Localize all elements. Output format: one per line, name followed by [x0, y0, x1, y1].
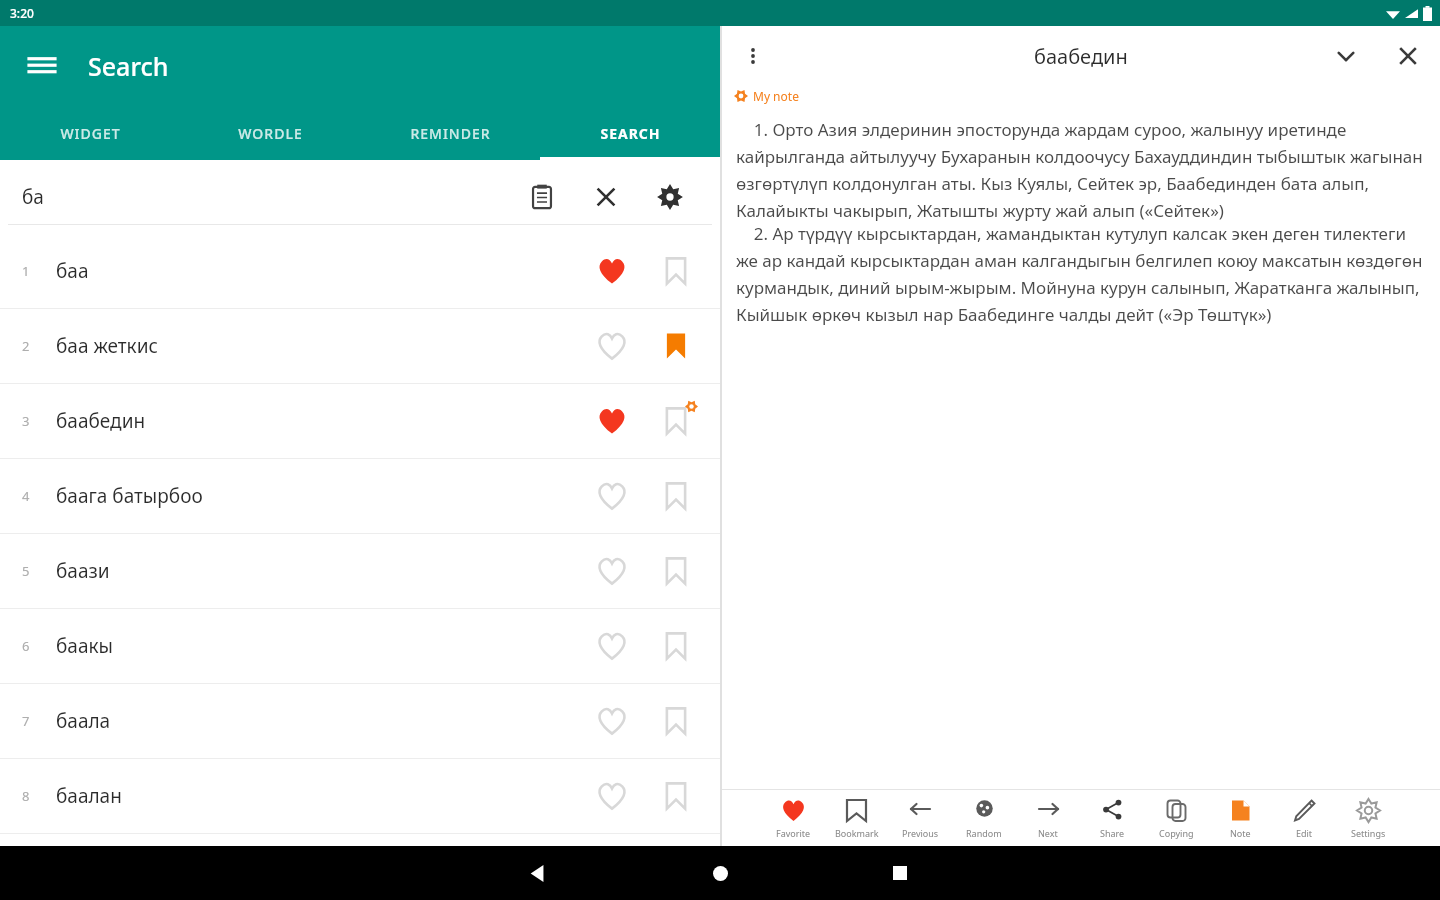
button[interactable]: Favorite — [588, 622, 636, 670]
staticText: Search — [88, 49, 169, 83]
staticText: WORDLE — [238, 124, 303, 143]
staticText: ба — [22, 184, 44, 210]
button[interactable]: Favorite — [762, 790, 825, 846]
button[interactable]: 4 — [0, 459, 720, 533]
staticText: 7 — [22, 712, 30, 730]
staticText: 2 — [22, 337, 30, 355]
button[interactable]: Paste — [522, 177, 562, 217]
button[interactable]: Bookmark — [652, 547, 700, 595]
staticText: Favorite — [776, 827, 811, 839]
button[interactable]: Bookmark — [652, 472, 700, 520]
staticText: Random — [966, 827, 1002, 839]
button[interactable]: Favorite — [588, 397, 636, 445]
staticText: 6 — [22, 637, 30, 655]
staticText: Share — [1100, 827, 1125, 839]
button[interactable]: Next — [1016, 790, 1080, 846]
button[interactable]: Bookmark — [652, 622, 700, 670]
button[interactable]: SEARCH — [540, 106, 720, 160]
staticText: 5 — [22, 562, 30, 580]
staticText: Previous — [902, 827, 939, 839]
staticText: My note — [753, 88, 799, 104]
staticText: баа — [56, 258, 89, 284]
staticText: REMINDER — [410, 124, 491, 143]
staticText: 3 — [22, 412, 30, 430]
staticText: баага батырбоо — [56, 483, 203, 509]
button[interactable]: Share — [1080, 790, 1144, 846]
staticText: 1. Орто Азия элдеринин эпосторунда жарда… — [736, 118, 1426, 222]
button[interactable]: 3 — [0, 384, 720, 458]
button[interactable]: Favorite — [588, 472, 636, 520]
staticText: Copying — [1159, 827, 1194, 839]
button[interactable]: WORDLE — [180, 106, 360, 160]
button[interactable]: 6 — [0, 609, 720, 683]
button[interactable]: Back — [513, 849, 561, 897]
button[interactable]: Clear — [586, 177, 626, 217]
staticText: Next — [1038, 827, 1058, 839]
button[interactable]: ба — [8, 169, 712, 225]
staticText: SEARCH — [600, 124, 661, 143]
button[interactable]: 2 — [0, 309, 720, 383]
button[interactable]: 7 — [0, 684, 720, 758]
button[interactable]: Random — [952, 790, 1016, 846]
button[interactable]: Bookmark — [825, 790, 888, 846]
button[interactable]: Menu — [20, 44, 64, 88]
staticText: Edit — [1296, 827, 1313, 839]
button[interactable]: Favorite — [588, 772, 636, 820]
button[interactable]: Note — [1208, 790, 1272, 846]
button[interactable]: Previous — [888, 790, 952, 846]
button[interactable]: Collapse — [1326, 36, 1366, 76]
staticText: баакы — [56, 633, 113, 659]
button[interactable]: Bookmark — [652, 247, 700, 295]
button[interactable]: My note — [734, 88, 799, 104]
button[interactable]: Close — [1388, 36, 1428, 76]
button[interactable]: 8 — [0, 759, 720, 833]
staticText: Bookmark — [835, 827, 879, 839]
button[interactable]: Edit — [1272, 790, 1336, 846]
staticText: Note — [1230, 827, 1251, 839]
button[interactable]: 1 — [0, 234, 720, 308]
staticText: баала — [56, 708, 111, 734]
staticText: баа жеткис — [56, 333, 158, 359]
button[interactable]: Settings — [1336, 790, 1400, 846]
button[interactable]: Favorite — [588, 547, 636, 595]
button[interactable]: Recent apps — [876, 849, 924, 897]
button[interactable]: Bookmark — [652, 772, 700, 820]
staticText: баалан — [56, 783, 122, 809]
button[interactable]: Bookmark — [652, 397, 700, 445]
button[interactable]: REMINDER — [360, 106, 540, 160]
button[interactable]: Settings — [650, 177, 690, 217]
staticText: баази — [56, 558, 110, 584]
staticText: 2. Ар түрдүү кырсыктардан, жамандыктан к… — [736, 222, 1426, 326]
staticText: баабедин — [56, 408, 146, 434]
staticText: баабедин — [1034, 43, 1128, 70]
button[interactable]: WIDGET — [0, 106, 180, 160]
button[interactable]: More options — [730, 33, 776, 79]
button[interactable]: Bookmark — [652, 322, 700, 370]
button[interactable]: Copying — [1144, 790, 1208, 846]
staticText: WIDGET — [60, 124, 121, 143]
staticText: 1 — [22, 262, 30, 280]
button[interactable]: Favorite — [588, 697, 636, 745]
staticText: Settings — [1351, 827, 1386, 839]
staticText: 8 — [22, 787, 30, 805]
staticText: 4 — [22, 487, 30, 505]
button[interactable]: Favorite — [588, 247, 636, 295]
button[interactable]: 5 — [0, 534, 720, 608]
staticText: 3:20 — [10, 5, 34, 21]
button[interactable]: Home — [696, 849, 744, 897]
button[interactable]: Bookmark — [652, 697, 700, 745]
button[interactable]: Favorite — [588, 322, 636, 370]
